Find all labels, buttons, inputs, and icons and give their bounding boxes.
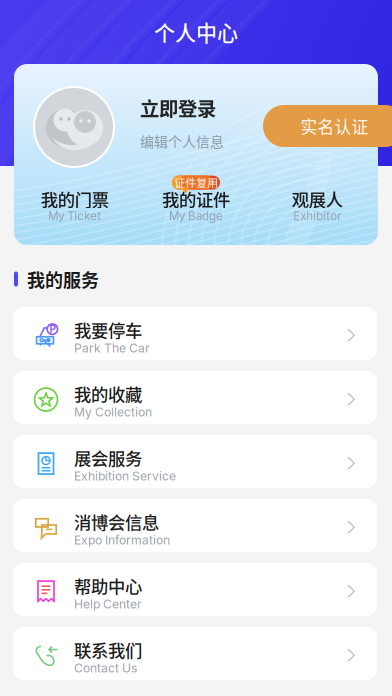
staticText: 我的证件: [162, 188, 230, 209]
button[interactable]: 我的收藏: [13, 371, 377, 424]
staticText: Contact Us: [74, 661, 137, 675]
staticText: Help Center: [74, 597, 142, 611]
staticText: P: [49, 323, 55, 335]
staticText: Park The Car: [74, 341, 150, 355]
button[interactable]: 我的门票: [14, 188, 135, 223]
staticText: 展会服务: [74, 448, 142, 468]
staticText: 我的收藏: [74, 384, 142, 404]
button[interactable]: 消博会信息: [13, 499, 377, 552]
staticText: 编辑个人信息: [140, 131, 224, 151]
staticText: 实名认证: [300, 114, 368, 138]
staticText: 证件复用: [174, 174, 218, 191]
staticText: My Collection: [74, 405, 152, 419]
staticText: 个人中心: [154, 17, 238, 47]
staticText: 联系我们: [74, 640, 142, 660]
button[interactable]: 联系我们: [13, 627, 377, 680]
button[interactable]: 实名认证: [263, 105, 392, 147]
staticText: 我要停车: [74, 320, 142, 340]
button[interactable]: 观展人: [257, 188, 378, 223]
button[interactable]: 展会服务: [13, 435, 377, 488]
button[interactable]: 我的证件: [135, 188, 257, 223]
staticText: Exhibition Service: [74, 469, 176, 483]
button[interactable]: P: [13, 307, 377, 360]
staticText: 我的门票: [41, 188, 109, 209]
button[interactable]: 帮助中心: [13, 563, 377, 616]
staticText: My Badge: [169, 209, 223, 223]
staticText: My Ticket: [48, 209, 101, 223]
staticText: 帮助中心: [74, 576, 142, 596]
staticText: 消博会信息: [74, 512, 159, 532]
staticText: 立即登录: [140, 94, 216, 122]
staticText: 观展人: [292, 188, 343, 209]
staticText: Exhibitor: [293, 209, 341, 223]
staticText: Expo Information: [74, 533, 170, 547]
staticText: 我的服务: [27, 266, 99, 292]
